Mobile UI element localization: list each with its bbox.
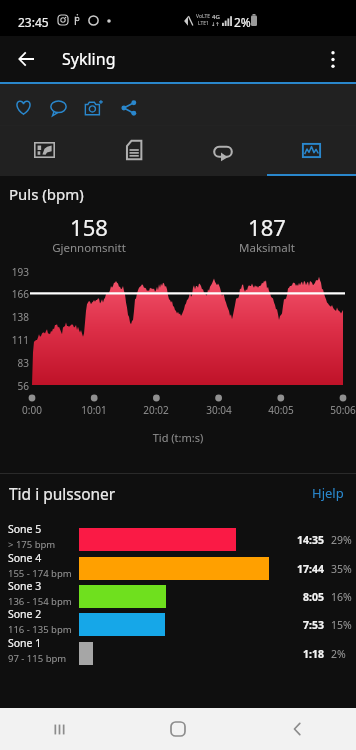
button[interactable]: Home [118,708,237,750]
staticText: ↓↑ [211,21,220,27]
staticText: 23:45 [18,14,49,30]
staticText: 136 - 154 bpm [8,595,72,608]
staticText: 50:06 [321,403,356,417]
staticText: 158 [0,212,178,242]
staticText: Gjennomsnitt [0,240,178,256]
button[interactable]: Add photo [76,90,111,125]
staticText: 8:05 [290,590,324,604]
staticText: Sone 5 [8,522,42,536]
staticText: 2% [331,647,356,661]
staticText: 16% [331,590,356,604]
staticText: 111 [0,333,29,347]
button[interactable]: Details [89,126,178,174]
button[interactable]: Sone 1 [0,636,356,666]
staticText: Sone 4 [8,551,42,565]
button[interactable]: Comment [41,90,76,125]
staticText: Sone 2 [8,607,42,621]
staticText: Sone 3 [8,579,42,593]
staticText: Hjelp [312,484,344,502]
button[interactable]: Hjelp [306,480,350,506]
staticText: 83 [0,356,29,370]
staticText: 29% [331,533,356,547]
button[interactable]: Back [0,36,46,82]
staticText: 35% [331,562,356,576]
staticText: 2% [234,14,251,30]
staticText: 20:02 [134,403,178,417]
staticText: LTE1 [198,20,209,27]
staticText: 4G [212,13,220,21]
staticText: 15% [331,618,356,632]
staticText: Tid i pulssoner [9,483,116,504]
staticText: 166 [0,287,29,301]
staticText: > 175 bpm [8,538,56,551]
staticText: Tid (t:m:s) [0,430,356,445]
staticText: 40:05 [259,403,303,417]
staticText: 116 - 135 bpm [8,623,72,636]
staticText: 14:35 [290,533,324,547]
button[interactable]: Sone 5 [0,522,356,552]
staticText: 56 [0,379,29,393]
staticText: VoLTE [196,13,211,20]
button[interactable]: Recent apps [0,708,118,750]
button[interactable]: Sone 4 [0,551,356,581]
staticText: 0:00 [10,403,54,417]
staticText: 30:04 [197,403,241,417]
button[interactable]: Share [111,90,146,125]
button[interactable]: Sone 2 [0,607,356,637]
button[interactable]: Back [237,708,356,750]
staticText: Sone 1 [8,636,42,650]
staticText: 7:53 [290,618,324,632]
staticText: Maksimalt [178,240,356,256]
staticText: 10:01 [72,403,116,417]
staticText: 187 [178,212,356,242]
button[interactable]: Like [6,90,41,125]
button[interactable]: Laps [178,126,267,174]
button[interactable]: Sone 3 [0,579,356,609]
button[interactable]: Charts [267,126,356,174]
button[interactable]: More options [310,36,356,82]
staticText: 97 - 115 bpm [8,652,67,665]
staticText: 17:44 [290,562,324,576]
staticText: 1:18 [290,647,324,661]
staticText: Puls (bpm) [9,184,84,204]
staticText: Sykling [62,48,116,70]
button[interactable]: Map [0,126,89,174]
staticText: 155 - 174 bpm [8,567,72,580]
staticText: 138 [0,310,29,324]
staticText: 193 [0,265,29,279]
